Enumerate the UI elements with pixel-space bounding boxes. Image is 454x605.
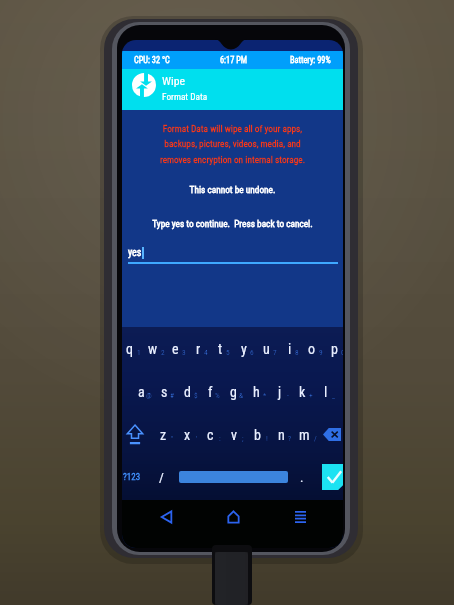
staticText: ! [266,434,268,443]
button[interactable]: d [176,370,199,413]
staticText: m [299,427,310,443]
button[interactable]: b [245,413,269,456]
staticText: yes [128,247,142,259]
staticText: 5 [226,348,230,357]
staticText: b [254,427,261,443]
staticText: v [231,427,237,443]
staticText: # [170,391,175,400]
button[interactable]: o [300,327,323,370]
staticText: - [287,391,289,400]
staticText: This cannot be undone. [122,184,343,195]
button[interactable]: p [323,327,343,370]
staticText: / [159,470,164,485]
button[interactable]: Shift [123,413,146,456]
staticText: z [160,427,167,443]
staticText: + [309,391,313,400]
button[interactable]: Enter [322,464,343,490]
staticText: 9 [319,348,323,357]
staticText: Type yes to continue. Press back to canc… [122,218,343,229]
staticText: . [300,470,304,485]
button[interactable]: q [122,327,141,370]
staticText: l [324,384,328,400]
button[interactable]: Wipe [122,69,343,110]
button[interactable]: Home [209,493,257,541]
staticText: @ [146,391,152,400]
staticText: 8 [295,348,299,357]
staticText: Battery: 99% [290,55,331,65]
staticText: s [161,384,168,400]
staticText: % [215,391,220,400]
staticText: 1 [137,348,141,357]
staticText: y [241,341,247,357]
staticText: * [263,391,267,400]
staticText: $ [194,391,198,400]
staticText: t [218,341,223,357]
button[interactable]: z [151,413,175,456]
staticText: : [219,434,221,443]
staticText: 6:17 PM [220,55,247,65]
staticText: w [148,341,158,357]
staticText: d [184,384,191,400]
staticText: f [208,384,213,400]
staticText: _ [332,391,335,400]
staticText: & [239,391,244,400]
staticText: 4 [204,348,208,357]
staticText: o [308,341,316,357]
staticText: a [138,384,145,400]
button[interactable]: w [141,327,164,370]
button[interactable]: t [209,327,232,370]
staticText: Format Data will wipe all of your apps, … [122,123,343,166]
button[interactable]: Recent apps [276,493,324,541]
staticText: x [184,427,191,443]
staticText: ? [288,434,292,443]
staticText: u [263,341,270,357]
button[interactable]: n [269,413,293,456]
staticText: 0 [341,348,343,357]
staticText: ' [196,434,198,443]
staticText: / [314,434,317,443]
staticText: ; [242,434,244,443]
staticText: 3 [182,348,186,357]
button[interactable]: g [222,370,245,413]
staticText: 6 [250,348,254,357]
button[interactable]: s [153,370,176,413]
staticText: h [253,384,260,400]
button[interactable]: . [292,456,312,499]
staticText: n [278,427,285,443]
staticText: CPU: 32 °C [134,55,170,65]
staticText: k [299,384,306,400]
button[interactable]: i [278,327,301,370]
button[interactable]: e [164,327,187,370]
staticText: j [278,384,282,400]
staticText: p [331,341,338,357]
button[interactable]: ?123 [122,456,142,499]
button[interactable]: m [292,413,316,456]
staticText: Wipe [162,74,186,88]
staticText: Format Data [162,91,208,102]
staticText: 7 [273,348,277,357]
button[interactable]: f [199,370,222,413]
staticText: g [230,384,237,400]
button[interactable]: / [150,456,172,499]
button[interactable]: y [232,327,255,370]
button[interactable]: j [268,370,291,413]
staticText: e [172,341,179,357]
button[interactable]: u [255,327,278,370]
staticText: i [288,341,292,357]
button[interactable]: Back [142,493,190,541]
button[interactable]: v [222,413,246,456]
staticText: q [126,341,134,357]
staticText: ?123 [123,472,141,483]
button[interactable]: Backspace [318,413,343,456]
button[interactable]: x [175,413,199,456]
button[interactable]: k [291,370,314,413]
button[interactable]: a [130,370,153,413]
button[interactable]: Space [179,471,288,483]
button[interactable]: c [198,413,222,456]
button[interactable]: h [245,370,268,413]
staticText: 2 [161,348,165,357]
staticText: r [196,341,201,357]
button[interactable]: r [187,327,210,370]
button[interactable]: l [314,370,337,413]
staticText: c [207,427,214,443]
